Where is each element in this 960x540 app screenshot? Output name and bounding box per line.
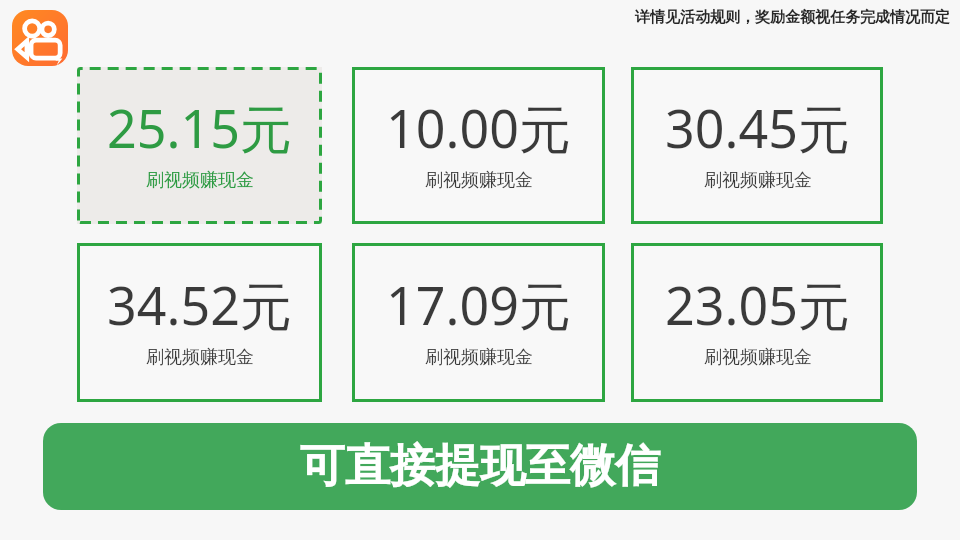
staticText: 刷视频赚现金 [146, 169, 254, 192]
staticText: 25.15元 [107, 92, 292, 163]
button[interactable]: 30.45元 [631, 67, 883, 224]
staticText: 30.45元 [665, 92, 850, 163]
button[interactable]: 23.05元 [631, 243, 883, 402]
button[interactable]: 可直接提现至微信 [43, 423, 917, 510]
staticText: 详情见活动规则，奖励金额视任务完成情况而定 [635, 8, 950, 27]
staticText: 刷视频赚现金 [146, 346, 254, 369]
button[interactable]: 10.00元 [352, 67, 605, 224]
button[interactable]: 详情见活动规则，奖励金额视任务完成情况而定 [600, 8, 950, 27]
staticText: 刷视频赚现金 [704, 346, 812, 369]
button[interactable]: Kuaishou [12, 10, 68, 66]
staticText: 17.09元 [386, 269, 571, 340]
staticText: 刷视频赚现金 [425, 169, 533, 192]
staticText: 10.00元 [386, 92, 571, 163]
staticText: 可直接提现至微信 [300, 438, 660, 495]
staticText: 刷视频赚现金 [425, 346, 533, 369]
button[interactable]: 25.15元 [77, 67, 322, 224]
staticText: 刷视频赚现金 [704, 169, 812, 192]
button[interactable]: 17.09元 [352, 243, 605, 402]
staticText: 23.05元 [665, 269, 850, 340]
button[interactable]: 34.52元 [77, 243, 322, 402]
staticText: 34.52元 [107, 269, 292, 340]
